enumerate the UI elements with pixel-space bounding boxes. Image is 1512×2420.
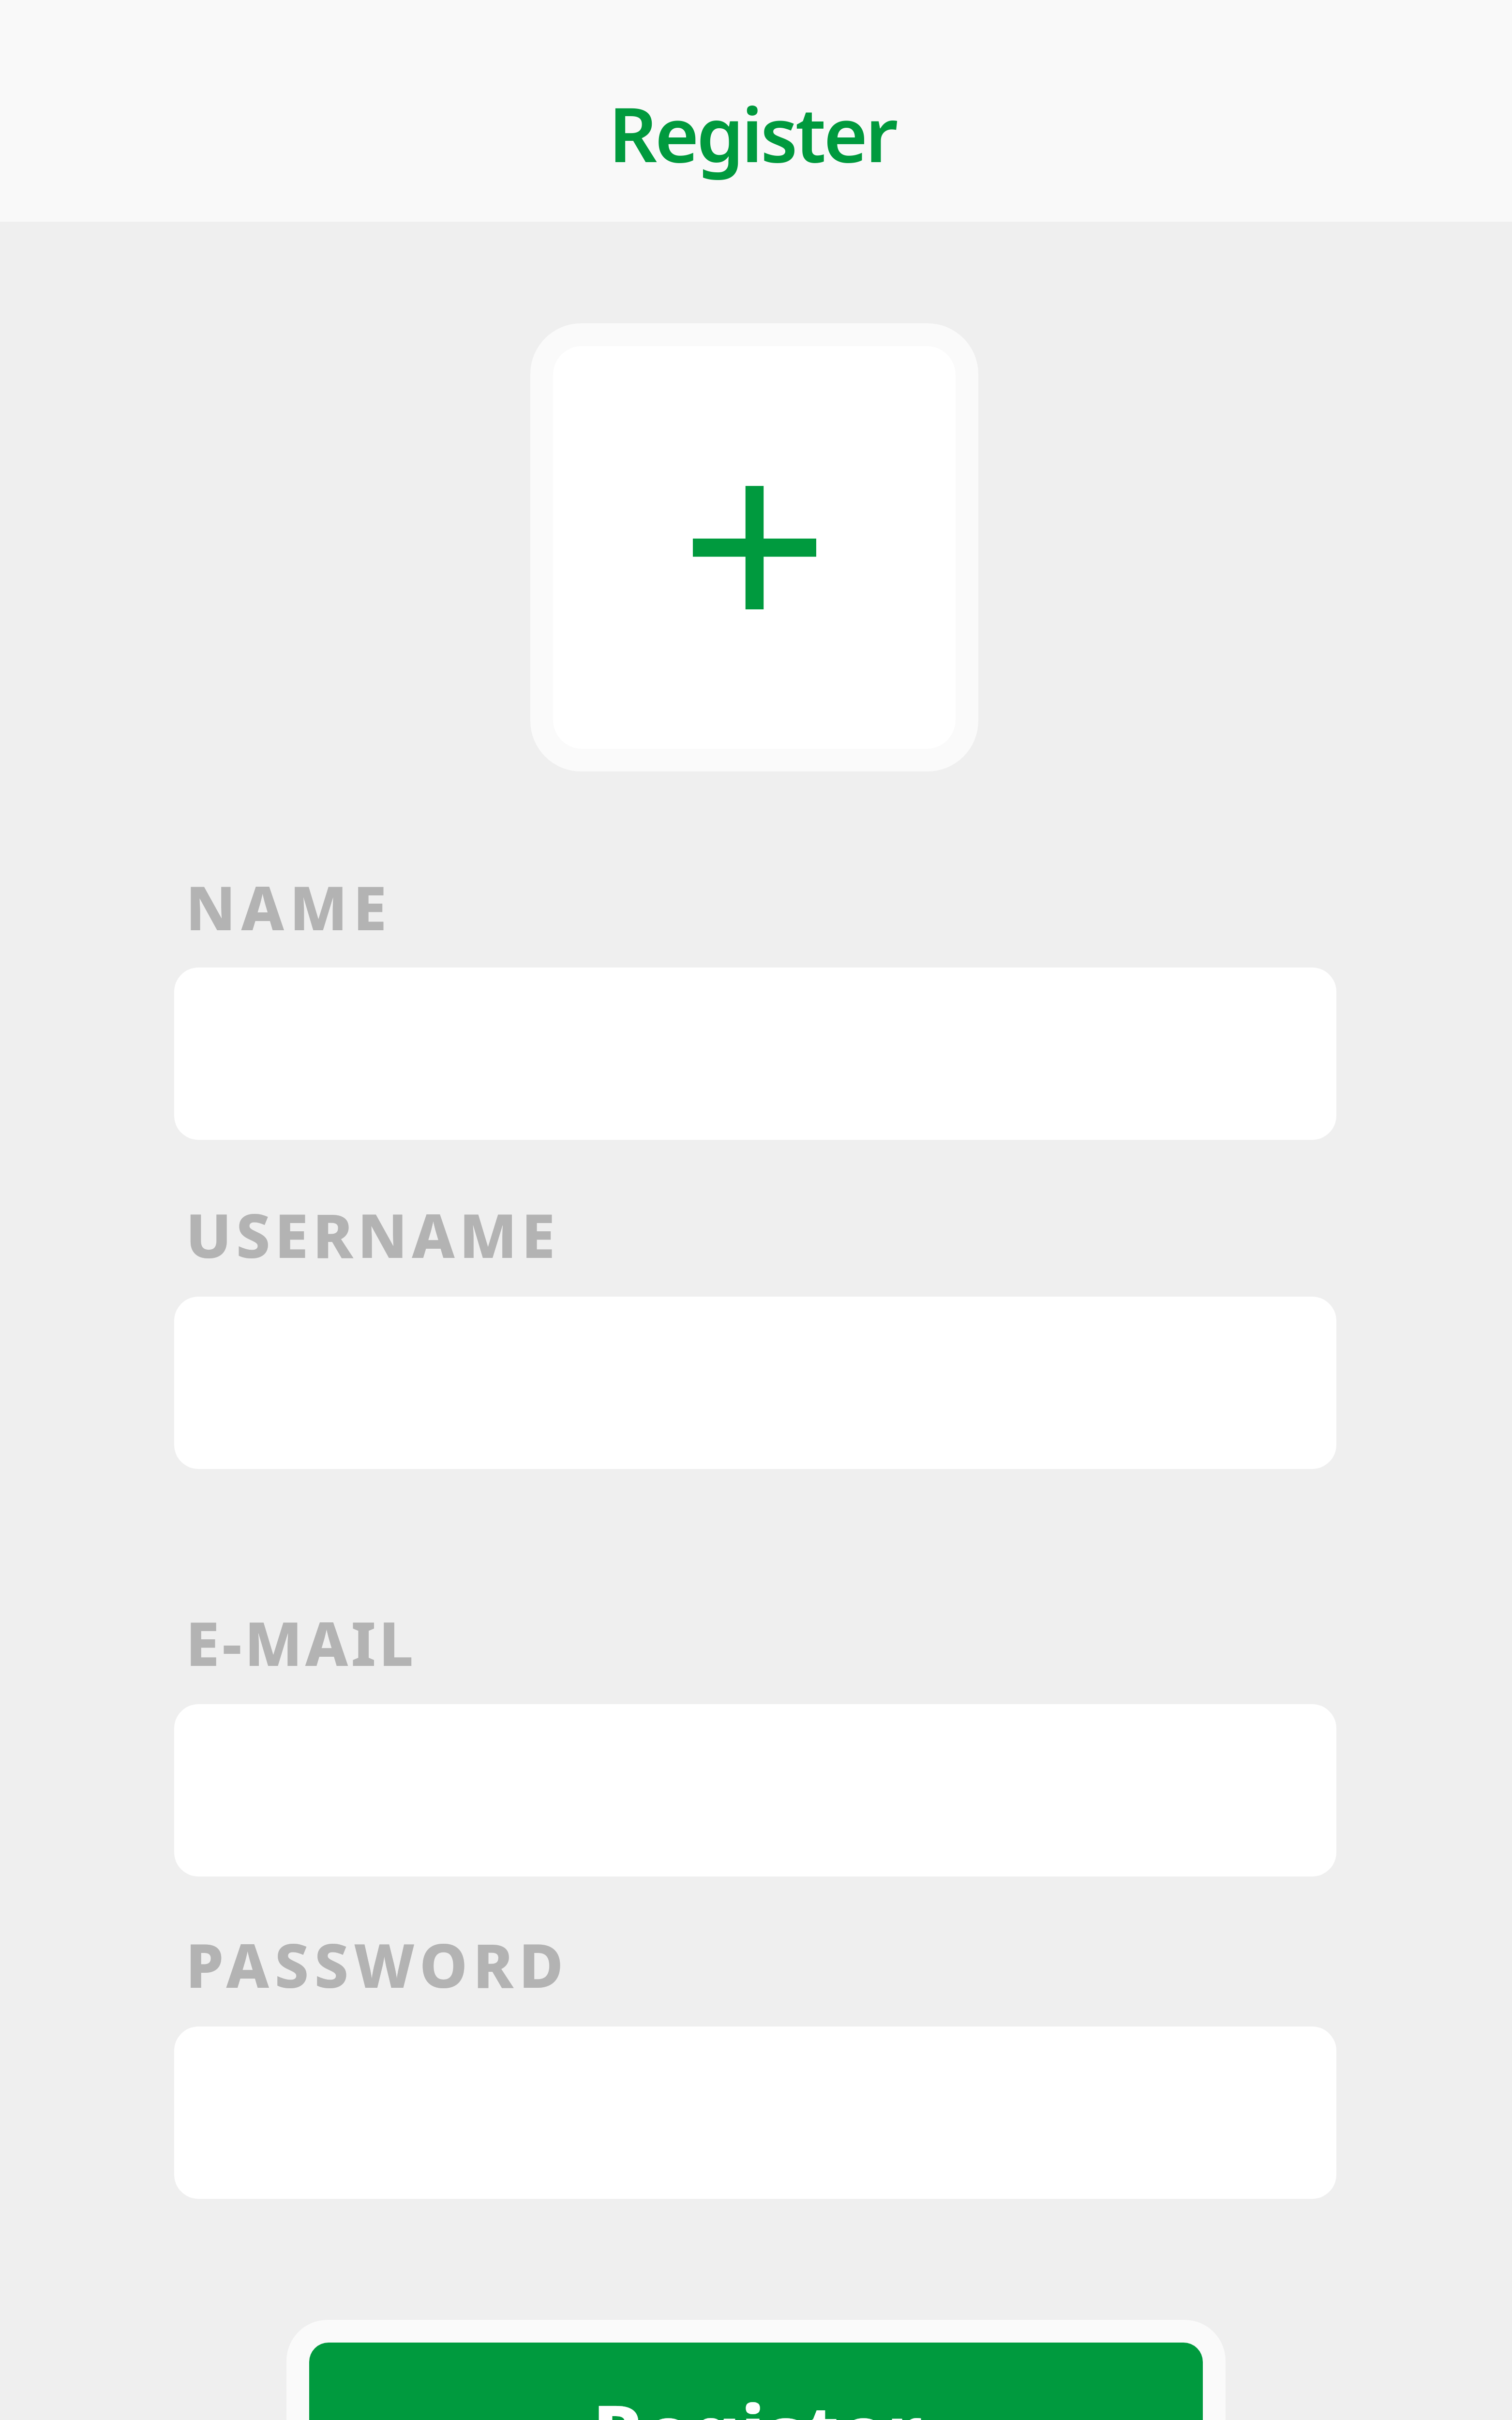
button[interactable]: Register [309, 2343, 1203, 2420]
button[interactable]: Add profile photo [553, 346, 956, 749]
staticText: USERNAME [186, 1193, 560, 1275]
staticText: PASSWORD [186, 1923, 569, 2005]
staticText: NAME [186, 865, 392, 948]
staticText: Register [609, 81, 896, 184]
staticText: E-MAIL [186, 1601, 417, 1683]
staticText: Register [593, 2379, 923, 2420]
